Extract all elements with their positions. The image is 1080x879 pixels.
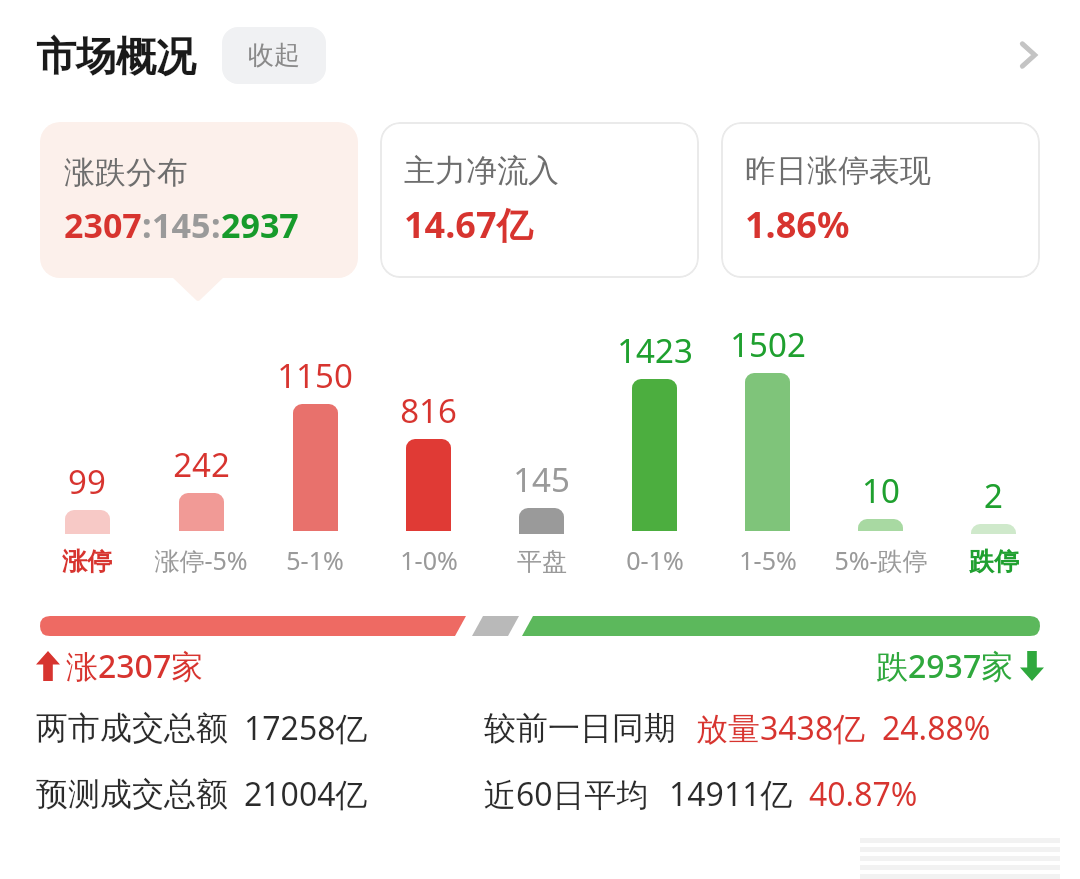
- staticText: 1502: [730, 322, 806, 367]
- staticText: 40.87%: [809, 772, 918, 816]
- staticText: 放量3438亿: [696, 706, 866, 750]
- staticText: 1-5%: [739, 543, 797, 577]
- staticText: 24.88%: [882, 706, 991, 750]
- staticText: 1423: [617, 328, 693, 373]
- staticText: 0-1%: [626, 543, 684, 577]
- staticText: 14.67亿: [404, 200, 533, 249]
- staticText: 5-1%: [286, 543, 344, 577]
- staticText: 21004亿: [244, 772, 368, 816]
- button[interactable]: 昨日涨停表现: [721, 122, 1040, 278]
- staticText: 预测成交总额: [36, 774, 228, 814]
- staticText: 平盘: [517, 546, 567, 577]
- staticText: 主力净流入: [404, 151, 559, 190]
- button[interactable]: More: [1000, 27, 1056, 83]
- staticText: :: [211, 202, 221, 248]
- staticText: 17258亿: [244, 706, 368, 750]
- staticText: 两市成交总额: [36, 708, 228, 748]
- staticText: 1-0%: [400, 543, 458, 577]
- staticText: 较前一日同期: [484, 708, 676, 748]
- button[interactable]: 主力净流入: [380, 122, 699, 278]
- button[interactable]: 收起: [222, 27, 326, 84]
- staticText: 涨停-5%: [154, 543, 248, 577]
- staticText: 涨跌分布: [64, 153, 188, 192]
- staticText: 2307: [64, 202, 142, 248]
- staticText: 14911亿: [669, 772, 793, 816]
- staticText: 跌停: [969, 546, 1019, 577]
- staticText: 昨日涨停表现: [745, 151, 931, 190]
- staticText: 145: [152, 202, 211, 248]
- staticText: 1.86%: [745, 200, 850, 249]
- staticText: 跌2937家: [876, 644, 1014, 688]
- staticText: 涨2307家: [66, 644, 204, 688]
- staticText: 市场概况: [36, 31, 196, 81]
- staticText: 2937: [221, 202, 299, 248]
- staticText: 99: [68, 459, 106, 504]
- staticText: 145: [513, 457, 570, 502]
- staticText: 2: [984, 473, 1003, 518]
- staticText: 近60日平均: [484, 772, 649, 816]
- staticText: :: [142, 202, 152, 248]
- staticText: 816: [400, 388, 457, 433]
- staticText: 5%-跌停: [834, 543, 928, 577]
- staticText: 1150: [277, 353, 353, 398]
- staticText: 242: [173, 442, 230, 487]
- button[interactable]: 涨跌分布: [40, 122, 358, 278]
- staticText: 10: [862, 468, 900, 513]
- staticText: 涨停: [62, 546, 112, 577]
- staticText: 收起: [248, 39, 300, 72]
